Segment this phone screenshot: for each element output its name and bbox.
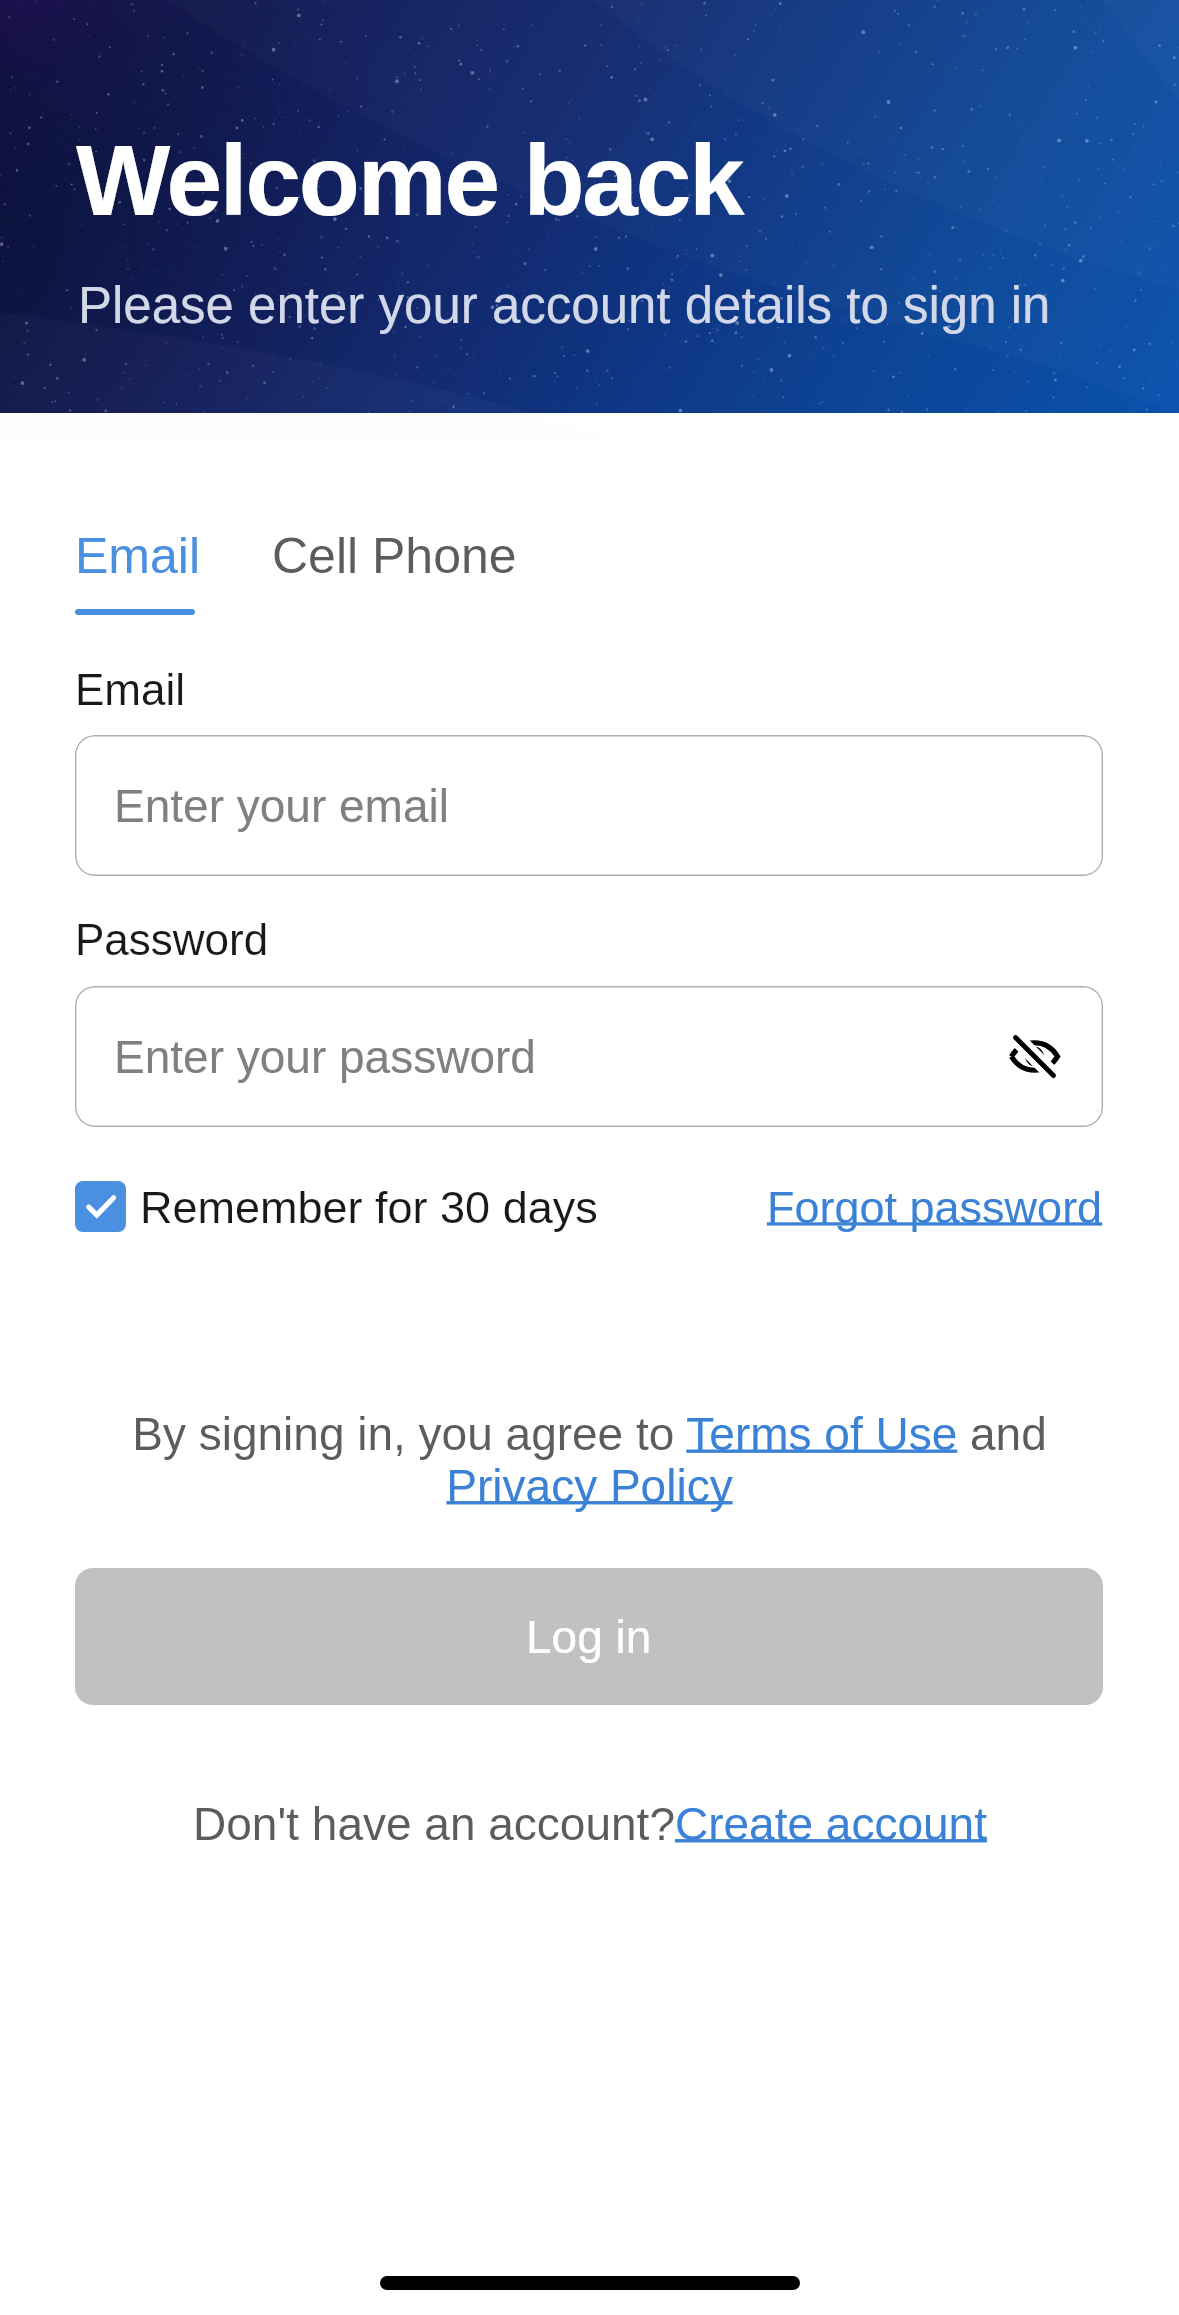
staticText: Welcome back bbox=[76, 124, 743, 236]
button[interactable]: Forgot password bbox=[767, 1182, 1103, 1232]
staticText: Log in bbox=[526, 1611, 652, 1662]
button[interactable]: Enter your email bbox=[75, 735, 1103, 876]
button[interactable]: Log in bbox=[75, 1568, 1103, 1705]
staticText: Email bbox=[75, 665, 186, 714]
button[interactable]: Remember for 30 days bbox=[75, 1181, 598, 1232]
button[interactable]: Cell Phone tab bbox=[272, 528, 517, 609]
button[interactable]: Show password bbox=[1007, 1029, 1062, 1084]
button[interactable]: Enter your password bbox=[75, 986, 1103, 1127]
staticText: Password bbox=[75, 915, 269, 964]
staticText: Email bbox=[75, 528, 201, 584]
staticText: Enter your email bbox=[114, 780, 449, 831]
staticText: Enter your password bbox=[114, 1031, 536, 1082]
staticText: Don't have an account?Create account bbox=[193, 1798, 987, 1849]
button[interactable]: Don't have an account?Create account bbox=[193, 1798, 987, 1849]
staticText: Please enter your account details to sig… bbox=[78, 277, 1051, 334]
staticText: By signing in, you agree to Terms of Use… bbox=[120, 1408, 1059, 1511]
staticText: Cell Phone bbox=[272, 528, 517, 584]
button[interactable]: Email tab bbox=[75, 528, 201, 615]
staticText: Remember for 30 days bbox=[140, 1182, 598, 1232]
button[interactable]: By signing in, you agree to Terms of Use… bbox=[120, 1408, 1059, 1511]
staticText: Forgot password bbox=[767, 1182, 1103, 1232]
